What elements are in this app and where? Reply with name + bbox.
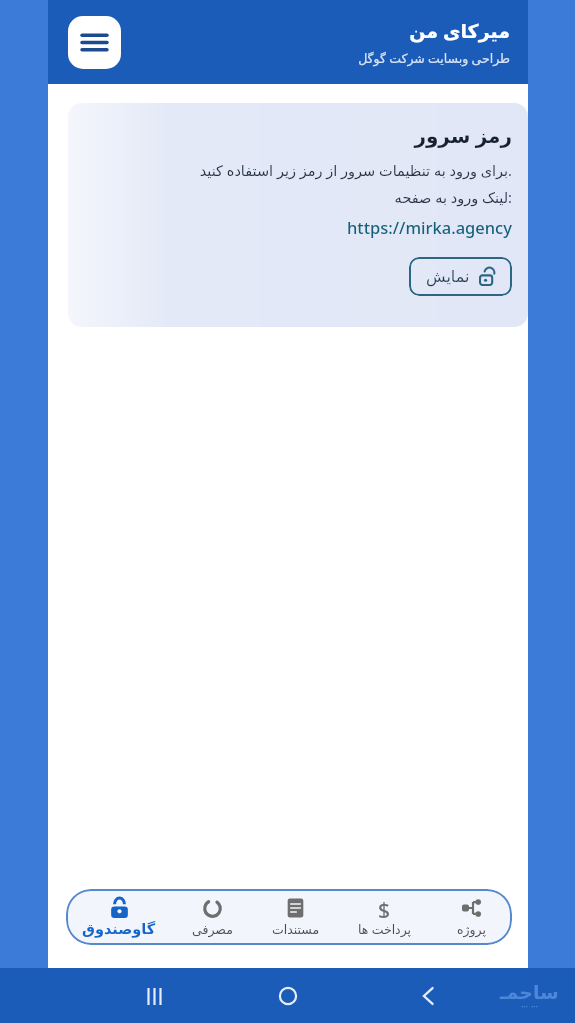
staticText: برای ورود به تنظیمات سرور از رمز زیر است… (199, 160, 512, 180)
button[interactable]: Recent apps (139, 981, 169, 1011)
button[interactable]: نمایش (409, 257, 512, 296)
staticText: ساحمـ (500, 981, 559, 1003)
staticText: گاوصندوق (82, 921, 156, 938)
button[interactable]: مصرفی (172, 889, 253, 945)
button[interactable]: پروژه (431, 889, 512, 945)
staticText: مصرفی (192, 922, 233, 937)
button[interactable]: Home (272, 980, 304, 1012)
staticText: لینک ورود به صفحه: (394, 187, 512, 207)
staticText: پروژه (457, 922, 486, 937)
staticText: نمایش (426, 267, 470, 286)
staticText: مستندات (272, 922, 320, 937)
button[interactable]: https://mirka.agency (347, 216, 512, 238)
button[interactable]: Open navigation menu (68, 16, 121, 69)
button[interactable]: گاوصندوق (66, 889, 172, 945)
button[interactable]: Back (413, 981, 443, 1011)
button[interactable]: $ (338, 889, 431, 945)
button[interactable]: مستندات (253, 889, 338, 945)
staticText: پرداخت ها (358, 921, 412, 938)
staticText: طراحی وبسایت شرکت گوگل (358, 50, 510, 67)
staticText: $ (378, 896, 391, 918)
staticText: میرکای من (409, 18, 510, 44)
staticText: رمز سرور (414, 122, 512, 149)
staticText: ••• ••• (521, 1003, 538, 1011)
